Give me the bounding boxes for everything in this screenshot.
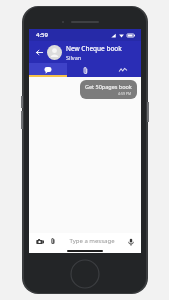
button[interactable]: Attach xyxy=(48,236,58,246)
staticText: Type a message xyxy=(69,237,115,245)
staticText: 4:59 xyxy=(36,31,48,39)
button[interactable]: Camera xyxy=(34,236,45,247)
staticText: Get 50pages book xyxy=(85,83,132,90)
staticText: 4:59 PM xyxy=(118,91,132,96)
staticText: Silvan xyxy=(66,54,82,61)
staticText: New Cheque book xyxy=(66,44,122,53)
button[interactable]: Type a message xyxy=(63,237,121,245)
button[interactable]: Contact avatar xyxy=(47,45,62,60)
button[interactable]: Chat xyxy=(29,63,67,77)
button[interactable]: Get 50pages book xyxy=(80,80,137,99)
button[interactable]: Voice input xyxy=(125,236,136,247)
button[interactable]: Back xyxy=(34,47,45,58)
button[interactable]: Activity xyxy=(104,63,141,77)
button[interactable]: Attachments xyxy=(67,63,104,77)
